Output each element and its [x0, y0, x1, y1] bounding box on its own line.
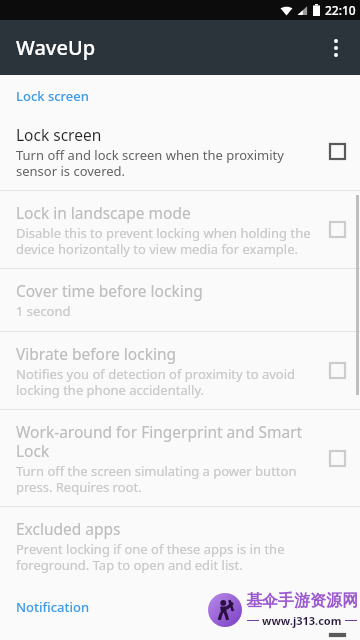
staticText: Lock in landscape mode: [16, 202, 191, 223]
staticText: Vibrate before locking: [16, 343, 177, 364]
staticText: Turn off the screen simulating a power b…: [16, 462, 319, 495]
staticText: 基伞手游资源网: [246, 591, 358, 611]
staticText: Lock screen: [16, 124, 102, 145]
button[interactable]: More options: [312, 24, 360, 72]
staticText: 1 second: [16, 302, 71, 320]
staticText: Notifies you of detection of proximity t…: [16, 365, 319, 398]
staticText: WaveUp: [16, 34, 96, 61]
staticText: www.j313.com: [262, 613, 342, 628]
staticText: Prevent locking if one of these apps is …: [16, 540, 319, 573]
staticText: 22:10: [325, 2, 356, 18]
button[interactable]: Vibrate before locking: [0, 332, 360, 409]
staticText: Work-around for Fingerprint and Smart Lo…: [16, 421, 319, 461]
staticText: Turn off and lock screen when the proxim…: [16, 146, 319, 179]
staticText: Disable this to prevent locking when hol…: [16, 224, 319, 257]
button[interactable]: Cover time before locking: [0, 269, 360, 331]
staticText: Cover time before locking: [16, 280, 203, 301]
staticText: Lock screen: [16, 87, 89, 105]
button[interactable]: Excluded apps: [0, 507, 360, 584]
staticText: Notification: [16, 598, 90, 616]
button[interactable]: Lock screen: [0, 113, 360, 190]
button[interactable]: Lock in landscape mode: [0, 191, 360, 268]
button[interactable]: Work-around for Fingerprint and Smart Lo…: [0, 410, 360, 506]
button[interactable]: Show notification: [0, 624, 360, 640]
staticText: Excluded apps: [16, 518, 121, 539]
